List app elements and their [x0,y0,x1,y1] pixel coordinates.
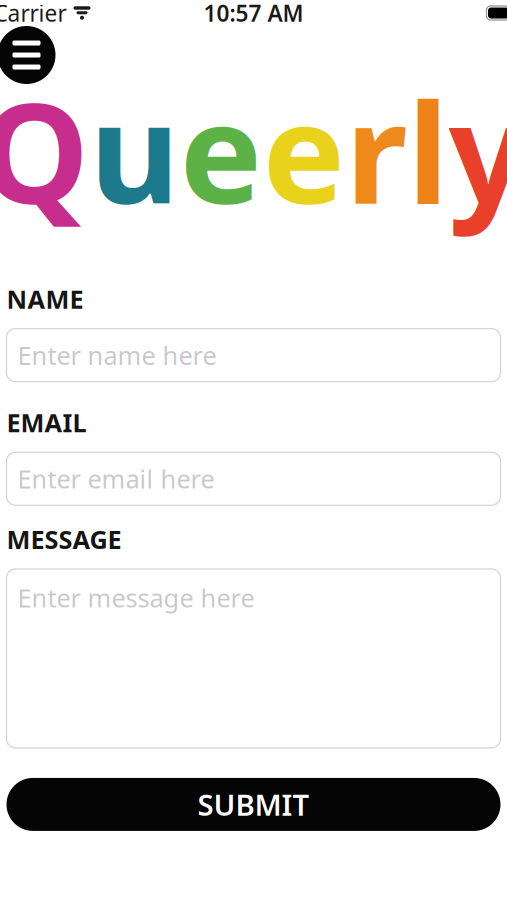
button[interactable]: Enter message here [6,569,500,748]
staticText: SUBMIT [197,785,309,824]
button[interactable]: Enter name here [6,329,500,382]
staticText: MESSAGE [6,522,121,556]
staticText: EMAIL [6,406,86,439]
staticText: y [448,58,507,242]
staticText: e [262,58,345,242]
staticText: u [89,58,179,242]
button[interactable]: Menu [0,26,55,84]
staticText: Enter message here [17,581,254,614]
button[interactable]: Enter email here [6,452,500,505]
staticText: NAME [6,282,83,316]
button[interactable]: SUBMIT [6,778,500,831]
staticText: Carrier [0,0,66,28]
staticText: Enter email here [17,462,214,496]
staticText: 10:57 AM [203,0,303,28]
staticText: Enter name here [17,338,216,372]
staticText: r [345,58,407,242]
staticText: l [407,58,448,242]
staticText: e [179,58,262,242]
staticText: Q [0,58,89,242]
